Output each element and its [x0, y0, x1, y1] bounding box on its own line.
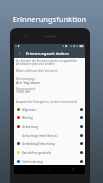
button[interactable]: Gedenktag/Geburtstag: [14, 139, 85, 148]
staticText: Wann sollen wir dich erinnern?: [16, 69, 58, 73]
button[interactable]: Wichtig: [14, 113, 85, 122]
staticText: Sie können die Erinnerungszeit ausgewähl…: [16, 59, 78, 66]
button[interactable]: Geburtstag (mein Bonus): [14, 131, 85, 140]
staticText: Erinnerungszeit: [16, 87, 36, 91]
staticText: Geburtstag: [22, 125, 38, 129]
staticText: 10:00 Uhr: [16, 90, 31, 94]
staticText: Gedenktag/Geburtstag: [22, 142, 55, 146]
staticText: Erinnerungstyp: [16, 77, 35, 81]
button[interactable]: Back: [14, 48, 25, 58]
staticText: Erinnerungszeit ändern: [26, 51, 69, 56]
staticText: Stiefmuttertag: [22, 160, 43, 164]
button[interactable]: Geburtstag: [14, 122, 85, 131]
staticText: Geburtstag (mein Bonus): [22, 134, 58, 138]
button[interactable]: Stiefmuttertag: [14, 157, 85, 166]
button[interactable]: Kanzleifrey gemischt: [14, 148, 85, 157]
staticText: Kanzleifrey gemischt: [22, 151, 52, 155]
button[interactable]: Allgemein: [14, 105, 85, 114]
staticText: Am Tag davor: [16, 80, 41, 85]
staticText: Auswahl der Kategorien, an die erinnert …: [16, 100, 77, 104]
staticText: Allgemein: [22, 108, 37, 112]
staticText: Erinnerungsfunktion: [0, 14, 101, 24]
staticText: Wichtig: [22, 116, 33, 120]
button[interactable]: Recent apps: [61, 165, 85, 174]
